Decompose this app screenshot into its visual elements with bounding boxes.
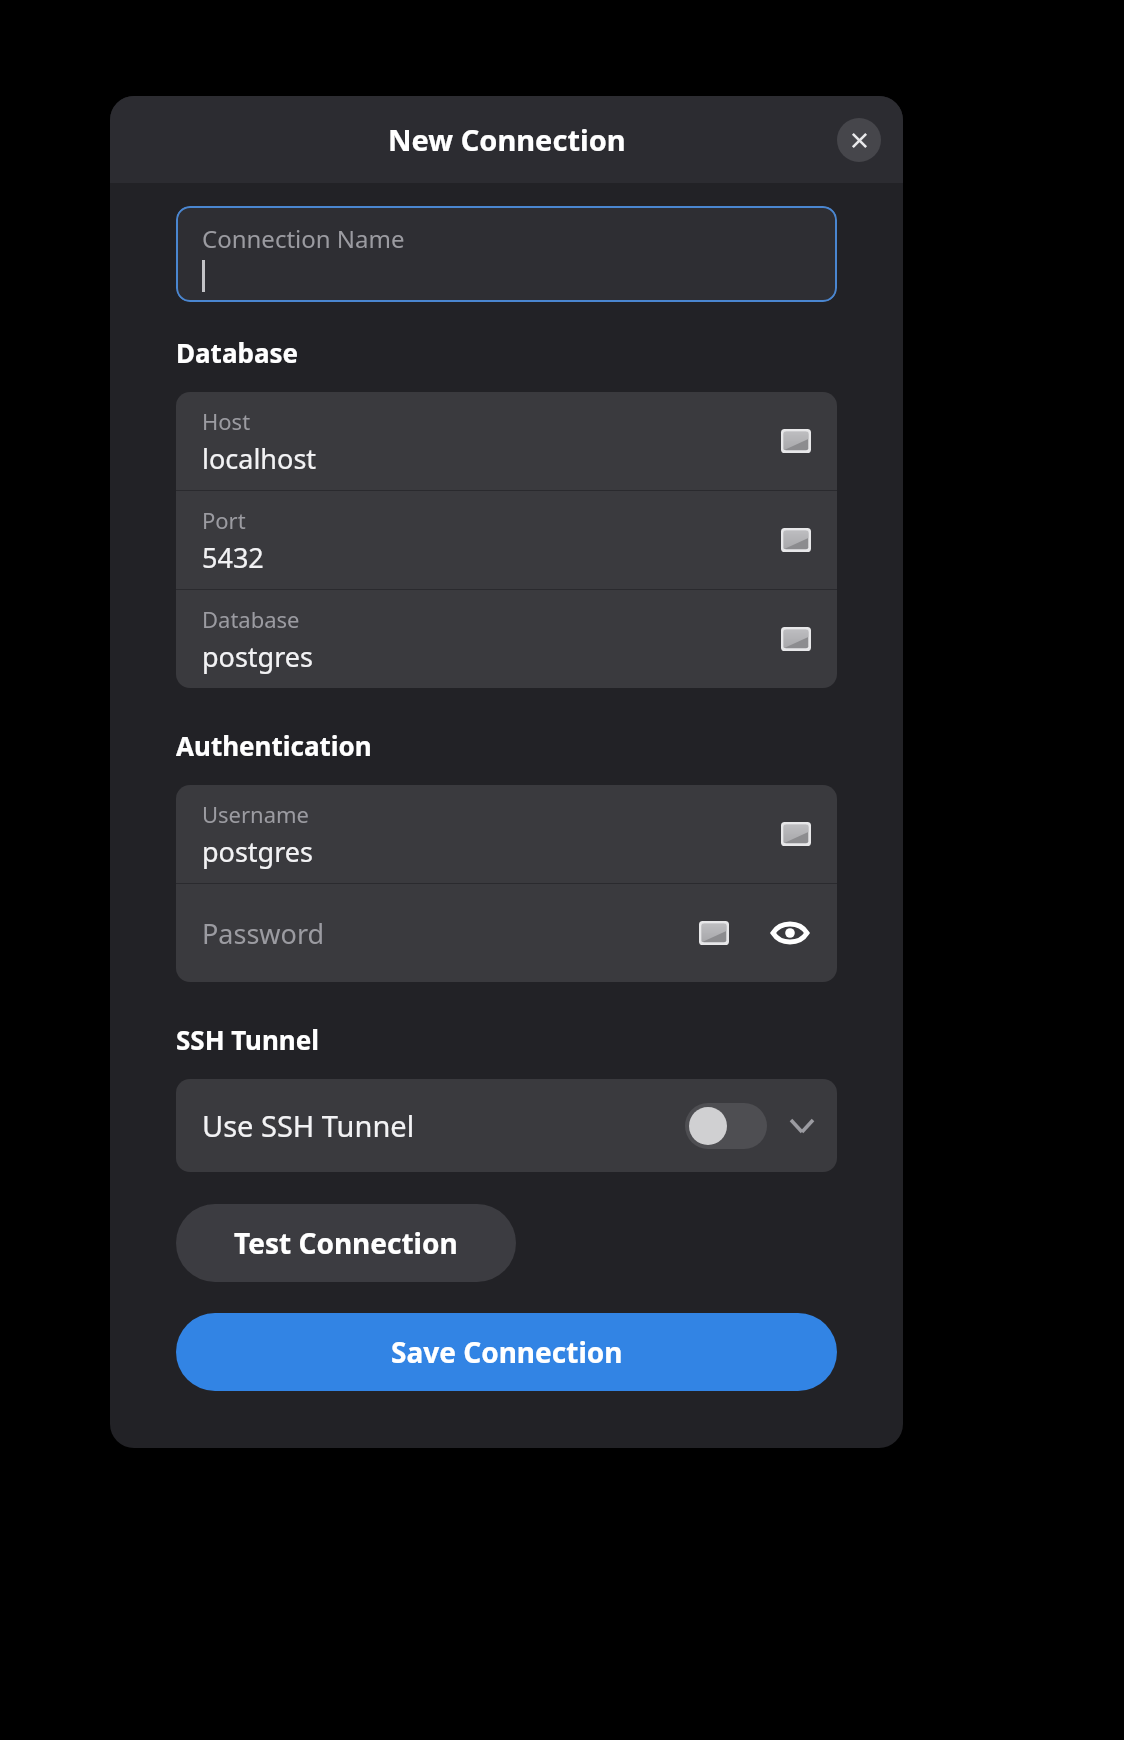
staticText: Save Connection	[391, 1333, 623, 1371]
staticText: Database	[202, 604, 300, 634]
staticText: postgres	[202, 833, 313, 870]
staticText: Host	[202, 406, 251, 436]
staticText: Port	[202, 505, 246, 535]
button[interactable]: Close	[837, 118, 881, 162]
staticText: SSH Tunnel	[176, 1022, 319, 1057]
button[interactable]: Connection Name	[176, 206, 837, 302]
staticText: Authentication	[176, 728, 372, 763]
staticText: Connection Name	[202, 222, 405, 255]
button[interactable]: Use SSH Tunnel	[176, 1079, 837, 1172]
button[interactable]: Save Connection	[176, 1313, 837, 1391]
button[interactable]: Port	[176, 491, 837, 589]
button[interactable]: Test Connection	[176, 1204, 516, 1282]
staticText: Use SSH Tunnel	[202, 1106, 685, 1145]
button[interactable]: Username	[176, 785, 837, 883]
button[interactable]: Password	[176, 884, 837, 982]
staticText: New Connection	[388, 120, 626, 159]
staticText: Test Connection	[234, 1224, 458, 1262]
button[interactable]: Use SSH Tunnel	[685, 1103, 767, 1149]
staticText: Password	[202, 915, 699, 952]
staticText: 5432	[202, 539, 264, 576]
button[interactable]: Show password	[769, 912, 811, 954]
button[interactable]: Host	[176, 392, 837, 490]
staticText: Username	[202, 799, 310, 829]
staticText: Database	[176, 335, 299, 370]
other: Expand	[787, 1111, 817, 1141]
staticText: postgres	[202, 638, 313, 675]
button[interactable]: Database	[176, 590, 837, 688]
staticText: localhost	[202, 440, 317, 477]
